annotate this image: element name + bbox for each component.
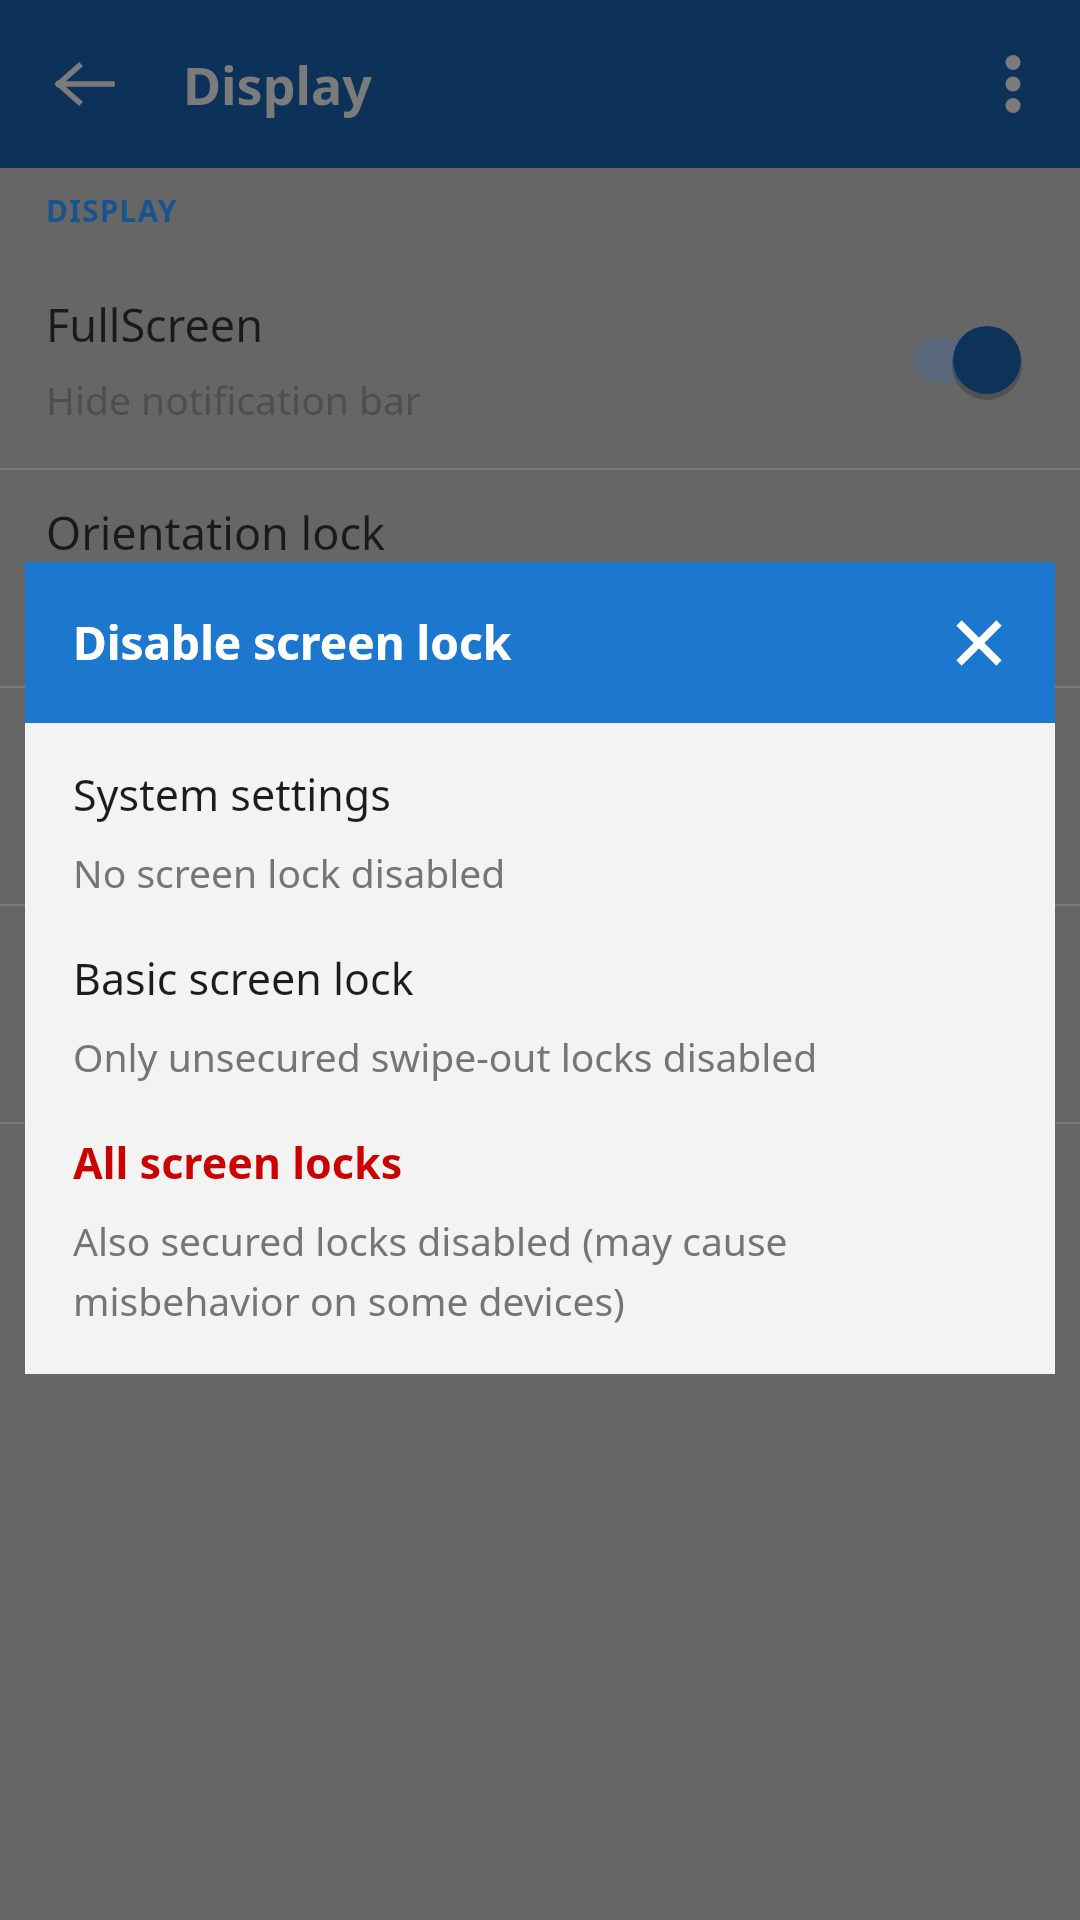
button[interactable] xyxy=(0,906,1080,1122)
staticText: DISPLAY xyxy=(46,190,178,231)
staticText: No screen lock disabled xyxy=(73,846,506,899)
staticText: All screen locks xyxy=(73,1133,403,1192)
button[interactable]: FullScreen xyxy=(0,252,1080,468)
button[interactable]: Basic screen lock xyxy=(25,941,1055,1091)
staticText: Disable screen lock xyxy=(73,611,512,674)
button[interactable]: Close xyxy=(927,591,1031,695)
button[interactable] xyxy=(0,688,1080,904)
staticText: FullScreen xyxy=(46,294,263,355)
staticText: Basic screen lock xyxy=(73,949,414,1008)
button[interactable]: Orientation lock xyxy=(0,470,1080,686)
button[interactable]: Back xyxy=(30,29,140,139)
button[interactable]: FullScreen toggle xyxy=(904,305,1034,415)
button[interactable]: More options xyxy=(958,29,1068,139)
staticText: Orientation lock xyxy=(46,502,386,563)
staticText: Only unsecured swipe-out locks disabled xyxy=(73,1030,818,1083)
staticText: System settings xyxy=(73,765,391,824)
staticText: Also secured locks disabled (may cause m… xyxy=(73,1214,1007,1328)
staticText: Display xyxy=(183,49,372,120)
button[interactable]: System settings xyxy=(25,757,1055,907)
staticText: Hide notification bar xyxy=(46,373,421,426)
button[interactable]: All screen locks xyxy=(25,1125,1055,1336)
